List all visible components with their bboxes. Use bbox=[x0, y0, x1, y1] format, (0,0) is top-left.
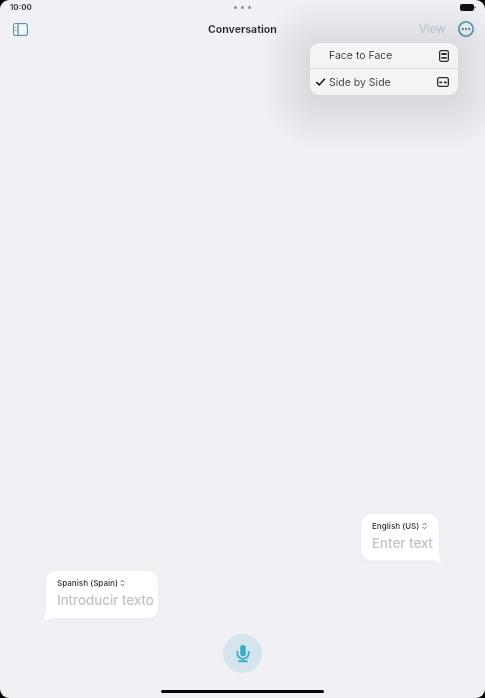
button[interactable]: Start recording bbox=[223, 634, 262, 673]
staticText: Face to Face bbox=[329, 49, 393, 62]
staticText: Conversation bbox=[208, 23, 277, 36]
button[interactable]: Show sidebar bbox=[7, 16, 33, 42]
staticText: English (US) bbox=[372, 521, 420, 531]
staticText: Side by Side bbox=[329, 76, 391, 89]
staticText: 10:00 bbox=[10, 2, 32, 11]
button[interactable]: View bbox=[416, 18, 449, 40]
staticText: Introducir texto bbox=[57, 592, 154, 608]
button[interactable]: Spanish (Spain) bbox=[46, 571, 158, 618]
button[interactable]: English (US) bbox=[361, 514, 439, 560]
button[interactable]: More options bbox=[456, 19, 476, 39]
staticText: View bbox=[419, 22, 446, 36]
button[interactable]: Face to Face bbox=[310, 43, 458, 68]
staticText: Enter text bbox=[372, 535, 434, 551]
button[interactable]: Side by Side bbox=[310, 69, 458, 95]
staticText: Spanish (Spain) bbox=[57, 578, 118, 588]
